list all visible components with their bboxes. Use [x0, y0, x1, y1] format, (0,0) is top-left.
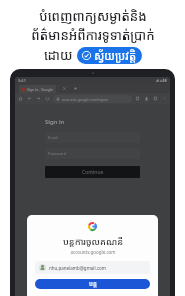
- button[interactable]: Reload: [45, 96, 50, 101]
- button[interactable]: Bookmark: [135, 96, 140, 101]
- button[interactable]: Password: [45, 148, 140, 159]
- button[interactable]: accounts.google.com/signin: [53, 95, 132, 103]
- staticText: ព័ត៌មានអំពីការទូទាត់ប្រាក់: [31, 26, 155, 44]
- staticText: Password: [48, 151, 67, 156]
- button[interactable]: Email: [45, 132, 140, 143]
- staticText: ស្វ័យប្រវត្តិ: [94, 48, 137, 63]
- staticText: accounts.google.com/signin: [62, 97, 109, 102]
- button[interactable]: Profile: [153, 96, 158, 101]
- button[interactable]: ស្វ័យប្រវត្តិ: [77, 47, 142, 64]
- button[interactable]: Back: [27, 96, 32, 101]
- staticText: បំពេញពាក្យសម្ងាត់និង: [39, 7, 147, 25]
- button[interactable]: Continue: [45, 166, 140, 178]
- button[interactable]: New tab: [73, 86, 78, 91]
- button[interactable]: Home: [18, 96, 23, 101]
- staticText: nhu.panelamb@gmail.com: [49, 265, 106, 271]
- button[interactable]: Close tab: [62, 86, 67, 91]
- staticText: Sign in - Google: [27, 87, 53, 92]
- staticText: Email: [48, 135, 59, 140]
- button[interactable]: Sign in - Google: [19, 85, 56, 93]
- button[interactable]: បន្ត: [35, 279, 150, 289]
- staticText: បន្ត: [89, 280, 97, 288]
- staticText: Sign in: [45, 118, 65, 126]
- staticText: ដោយ: [44, 46, 73, 64]
- staticText: accounts.google.com: [70, 249, 116, 255]
- staticText: បន្តការចូលគណនី: [63, 235, 123, 247]
- button[interactable]: nhu.panelamb@gmail.com: [35, 261, 150, 274]
- button[interactable]: Forward: [36, 96, 41, 101]
- staticText: 9:41: [18, 78, 26, 83]
- button[interactable]: Downloads: [144, 96, 149, 101]
- staticText: Continue: [82, 169, 104, 176]
- button[interactable]: More options: [162, 96, 167, 101]
